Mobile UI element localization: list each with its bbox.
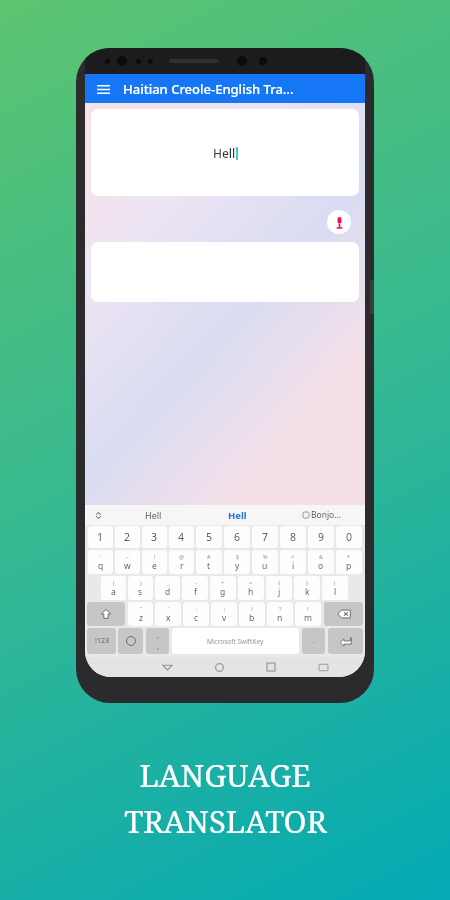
button[interactable]: * — [336, 550, 362, 574]
staticText: @ — [179, 553, 184, 560]
button[interactable]: 7 — [252, 526, 278, 548]
staticText: k — [305, 586, 310, 598]
button[interactable]: @ — [169, 550, 194, 574]
staticText: !123 — [95, 636, 109, 646]
button[interactable]: - — [182, 576, 208, 600]
staticText: o — [318, 560, 324, 572]
staticText: 9 — [318, 530, 325, 544]
button[interactable]: Bonjo... — [280, 505, 365, 525]
button[interactable]: Hell — [91, 109, 359, 196]
button[interactable]: Backspace — [324, 602, 363, 626]
staticText: ) — [140, 579, 142, 586]
button[interactable]: Shift — [87, 602, 125, 626]
staticText: LANGUAGE — [139, 754, 311, 796]
staticText: ? — [279, 605, 282, 612]
staticText: " — [140, 605, 143, 612]
staticText: 0 — [346, 530, 353, 544]
button[interactable]: " — [128, 602, 153, 626]
button[interactable]: ' — [155, 602, 181, 626]
button[interactable]: Menu — [93, 79, 113, 99]
staticText: 7 — [262, 530, 269, 544]
staticText: * — [347, 553, 351, 560]
button[interactable]: ^ — [280, 550, 306, 574]
button[interactable]: % — [252, 550, 278, 574]
button[interactable]: 6 — [224, 526, 250, 548]
staticText: ( — [113, 579, 115, 586]
staticText: x — [166, 612, 171, 624]
button[interactable]: 1 — [88, 526, 113, 548]
staticText: p — [346, 560, 352, 572]
button[interactable]: ! — [142, 550, 167, 574]
button[interactable]: + — [210, 576, 236, 600]
staticText: % — [263, 553, 268, 560]
button[interactable]: & — [308, 550, 334, 574]
staticText: b — [249, 612, 255, 624]
button[interactable]: : — [183, 602, 209, 626]
button[interactable]: _ — [155, 576, 180, 600]
button[interactable]: } — [294, 576, 320, 600]
button[interactable]: # — [196, 550, 222, 574]
staticText: g — [220, 586, 226, 598]
button[interactable]: ` — [88, 550, 113, 574]
staticText: 4 — [178, 530, 185, 544]
button[interactable]: Hell — [111, 505, 195, 525]
staticText: $ — [236, 553, 240, 560]
button[interactable]: ) — [128, 576, 153, 600]
button[interactable]: / — [239, 602, 265, 626]
button[interactable]: Symbols — [87, 628, 116, 654]
staticText: Haitian Creole-English Tra... — [123, 80, 294, 98]
button[interactable]: Emoji — [118, 628, 143, 654]
staticText: _ — [167, 579, 170, 586]
button[interactable]: $ — [224, 550, 250, 574]
button[interactable]: Menu — [85, 74, 365, 103]
button[interactable]: Home — [193, 657, 245, 677]
button[interactable]: Microsoft SwiftKey — [172, 628, 299, 654]
button[interactable]: ! — [295, 602, 321, 626]
staticText: ` — [100, 553, 102, 560]
staticText: | — [333, 579, 337, 586]
staticText: ' — [168, 605, 170, 612]
staticText: Hell — [145, 509, 162, 521]
staticText: z — [139, 612, 143, 624]
button[interactable]: ~ — [115, 550, 140, 574]
button[interactable]: 2 — [115, 526, 140, 548]
staticText: a — [111, 586, 116, 598]
staticText: m — [304, 612, 312, 624]
staticText: , — [157, 631, 159, 641]
staticText: ^ — [291, 553, 295, 560]
button[interactable]: ( — [101, 576, 126, 600]
button[interactable]: ; — [211, 602, 237, 626]
staticText: Hell — [228, 509, 247, 522]
staticText: } — [306, 579, 309, 586]
staticText: : — [196, 605, 198, 612]
button[interactable]: Voice input — [327, 210, 351, 234]
button[interactable]: Hell — [195, 505, 280, 525]
button[interactable]: Recents — [245, 657, 297, 677]
button[interactable]: Expand — [85, 505, 111, 525]
staticText: r — [180, 560, 184, 572]
staticText: ! — [307, 605, 309, 612]
button[interactable]: Enter — [328, 628, 363, 654]
button[interactable]: 4 — [169, 526, 194, 548]
button[interactable]: Switch keyboard — [297, 657, 349, 677]
button[interactable]: Voice typing — [146, 628, 169, 654]
staticText: = — [249, 579, 253, 586]
button[interactable]: 5 — [196, 526, 222, 548]
button[interactable]: | — [322, 576, 348, 600]
button[interactable]: ? — [267, 602, 293, 626]
button[interactable]: 8 — [280, 526, 306, 548]
button[interactable]: Back — [141, 657, 193, 677]
button[interactable]: { — [266, 576, 292, 600]
button[interactable]: 9 — [308, 526, 334, 548]
staticText: ~ — [126, 553, 130, 560]
button[interactable]: 0 — [336, 526, 362, 548]
staticText: Microsoft SwiftKey — [207, 637, 264, 646]
button[interactable]: 3 — [142, 526, 167, 548]
staticText: s — [138, 586, 143, 598]
button[interactable]: . — [302, 628, 325, 654]
staticText: 2 — [124, 530, 131, 544]
staticText: / — [251, 605, 254, 612]
button[interactable]: = — [238, 576, 264, 600]
staticText: 6 — [234, 530, 241, 544]
